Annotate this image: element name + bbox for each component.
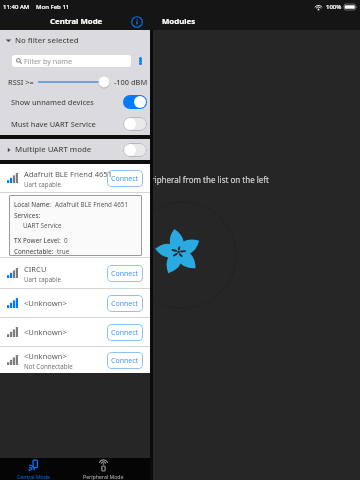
staticText: Local Name: (14, 200, 52, 209)
staticText: Connect (111, 328, 139, 338)
staticText: TX Power Level: (14, 236, 61, 245)
staticText: 0 (64, 236, 68, 245)
staticText: RSSI >= (8, 77, 34, 87)
staticText: UART Service (23, 221, 62, 230)
button[interactable]: No filter selected (0, 30, 150, 50)
button[interactable]: Multiple UART mode (0, 139, 150, 160)
staticText: <Unknown> (24, 327, 67, 337)
staticText: Connect (111, 174, 139, 184)
staticText: Services: (14, 211, 41, 220)
staticText: Adafruit BLE Friend 4651 (55, 200, 129, 209)
staticText: Select a peripheral from the list on the… (111, 174, 269, 185)
button[interactable] (38, 75, 109, 89)
staticText: Uart capable (24, 180, 62, 188)
button[interactable]: More options (134, 50, 147, 71)
staticText: Connect (111, 356, 139, 366)
staticText: <Unknown> (24, 351, 67, 361)
staticText: Central Mode (17, 473, 50, 480)
staticText: true (57, 247, 70, 256)
button[interactable]: Filter by name (12, 55, 131, 67)
staticText: No filter selected (15, 35, 79, 46)
staticText: Must have UART Service (11, 119, 96, 129)
button[interactable]: <Unknown> (0, 289, 150, 317)
button[interactable]: Show unnamed devices (0, 92, 150, 112)
staticText: CIRCU (24, 264, 47, 274)
button[interactable]: Info (131, 16, 143, 28)
staticText: Show unnamed devices (11, 97, 94, 107)
staticText: Adafruit BLE Friend 4651 (24, 169, 113, 179)
staticText: Peripheral Mode (83, 473, 124, 480)
staticText: Connect (111, 269, 139, 279)
button[interactable]: Adafruit BLE Friend 4651 (0, 164, 150, 192)
button[interactable]: Central Mode (8, 458, 58, 480)
staticText: Uart capable (24, 275, 62, 283)
button[interactable]: CIRCU (0, 258, 150, 288)
button[interactable]: Peripheral Mode (78, 458, 128, 480)
button[interactable]: <Unknown> (0, 318, 150, 346)
button[interactable]: Must have UART Service (0, 112, 150, 135)
staticText: Multiple UART mode (15, 144, 92, 155)
button[interactable]: Connect (107, 170, 143, 187)
button[interactable]: <Unknown> (0, 347, 150, 373)
button[interactable]: Connect (107, 295, 143, 312)
staticText: Central Mode (50, 16, 103, 27)
staticText: Not Connectable (24, 362, 73, 370)
button[interactable]: Connect (107, 324, 143, 341)
staticText: Connectable: (14, 247, 54, 256)
staticText: 11:40 AM (3, 3, 30, 11)
button[interactable]: Connect (107, 265, 143, 282)
staticText: Mon Feb 11 (36, 3, 70, 11)
staticText: Filter by name (24, 56, 72, 66)
staticText: 100% (326, 3, 342, 11)
staticText: -100 dBM (114, 77, 148, 87)
staticText: Modules (162, 16, 196, 27)
staticText: Connect (111, 299, 139, 309)
staticText: <Unknown> (24, 298, 67, 308)
button[interactable]: Connect (107, 352, 143, 369)
